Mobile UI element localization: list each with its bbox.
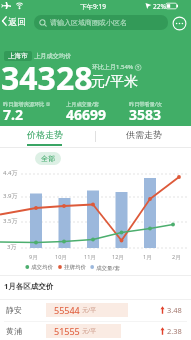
staticText: 1月 — [143, 253, 152, 261]
staticText: 成交量/套 — [96, 264, 121, 272]
button[interactable]: 黄浦 — [0, 320, 191, 340]
staticText: 2.38 — [167, 326, 182, 336]
button[interactable]: 上海市 — [4, 51, 32, 61]
staticText: 51555 — [54, 325, 80, 337]
staticText: 黄浦 — [6, 326, 22, 336]
staticText: 昨日带看量/次 — [129, 100, 163, 107]
button[interactable]: 请输入区域商圈或小区名 — [34, 15, 168, 30]
staticText: 供需走势 — [126, 129, 162, 140]
staticText: 上月成交均价 — [34, 52, 72, 60]
button[interactable]: 供需走势 — [95, 126, 191, 147]
staticText: 11月 — [84, 253, 96, 261]
staticText: 元/平米 — [91, 71, 139, 90]
staticText: 3.9万 — [3, 192, 18, 200]
button[interactable]: 静安 — [0, 299, 191, 321]
staticText: 请输入区域商圈或小区名 — [50, 18, 127, 27]
staticText: 全部 — [41, 154, 55, 163]
staticText: 上月成交量/套 — [66, 100, 100, 107]
staticText: 55544 — [54, 304, 80, 316]
staticText: 12月 — [112, 253, 124, 261]
staticText: 环比上月1.54% — [92, 63, 133, 71]
staticText: 3万 — [7, 243, 17, 251]
staticText: 3.5万 — [3, 217, 18, 225]
staticText: 10月 — [55, 253, 67, 261]
staticText: 46699 — [66, 105, 107, 124]
button[interactable]: 全部 — [35, 152, 61, 165]
staticText: 成交均价 — [31, 264, 53, 271]
staticText: 34328 — [1, 56, 93, 100]
staticText: 价格走势 — [27, 129, 63, 140]
staticText: 2月 — [172, 253, 181, 261]
staticText: 元/平 — [82, 306, 97, 314]
staticText: 元/平 — [82, 327, 97, 335]
staticText: 下午9:19 — [80, 2, 106, 11]
staticText: 9月 — [29, 253, 38, 261]
staticText: 静安 — [6, 305, 22, 315]
staticText: 3583 — [129, 105, 162, 124]
staticText: 返回 — [8, 16, 26, 27]
button[interactable] — [171, 15, 187, 31]
button[interactable]: 返回 — [1, 14, 31, 28]
staticText: 上海市 — [8, 52, 28, 60]
staticText: 7.2 — [3, 105, 23, 124]
staticText: 1月各区成交价 — [4, 281, 54, 291]
staticText: 4.4万 — [3, 169, 18, 177]
staticText: 昨日新增房源环比 ① — [3, 100, 51, 107]
staticText: 3.48 — [167, 305, 182, 315]
button[interactable]: 价格走势 — [0, 126, 95, 147]
staticText: 22% — [153, 2, 166, 11]
staticText: 挂牌均价 — [64, 264, 86, 271]
